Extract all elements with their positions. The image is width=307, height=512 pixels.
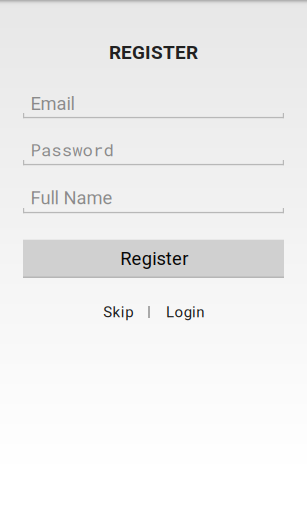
staticText: Full Name (30, 187, 112, 209)
button[interactable]: Login (163, 302, 207, 322)
staticText: Skip (103, 303, 133, 321)
button[interactable]: Email (23, 93, 284, 127)
button[interactable]: Password (23, 138, 284, 174)
button[interactable]: Register (23, 240, 284, 278)
staticText: REGISTER (109, 41, 198, 64)
button[interactable]: Full Name (23, 187, 284, 222)
button[interactable]: Skip (96, 302, 140, 322)
staticText: Register (120, 248, 188, 269)
staticText: Email (30, 93, 74, 114)
staticText: Login (166, 303, 204, 321)
staticText: Password (30, 138, 113, 161)
